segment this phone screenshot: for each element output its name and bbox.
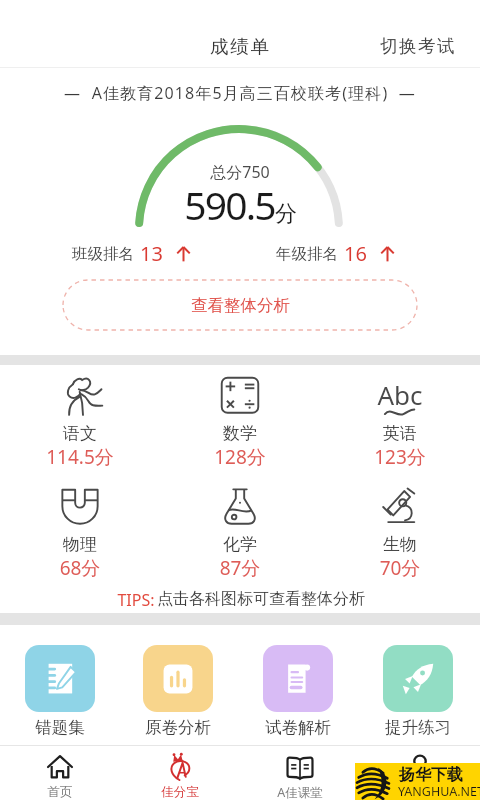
button[interactable]: Abc bbox=[338, 369, 462, 471]
staticText: Abc bbox=[338, 377, 462, 412]
staticText: 查看整体分析 bbox=[191, 295, 290, 316]
staticText: 扬华下载 bbox=[399, 765, 463, 785]
button[interactable]: 我的 bbox=[378, 745, 462, 800]
button[interactable]: 试卷解析 bbox=[250, 640, 346, 740]
staticText: 分 bbox=[275, 200, 297, 228]
staticText: 数学 bbox=[178, 423, 302, 444]
staticText: 成绩单 bbox=[210, 35, 271, 58]
button[interactable]: 成绩单 bbox=[210, 35, 271, 58]
staticText: 物理 bbox=[18, 534, 142, 555]
staticText: 我的 bbox=[378, 784, 462, 800]
button[interactable]: 年级排名 bbox=[276, 240, 394, 267]
staticText: 87分 bbox=[178, 555, 302, 581]
staticText: — A佳教育2018年5月高三百校联考(理科) — bbox=[0, 82, 480, 104]
button[interactable]: 原卷分析 bbox=[130, 640, 226, 740]
button[interactable]: 切换考试 bbox=[360, 25, 480, 67]
staticText: 13 bbox=[140, 240, 163, 267]
button[interactable]: 数学 bbox=[178, 369, 302, 471]
staticText: 首页 bbox=[18, 784, 102, 800]
staticText: TIPS: bbox=[115, 589, 157, 611]
staticText: 16 bbox=[344, 240, 367, 267]
staticText: 590.5 bbox=[184, 178, 275, 231]
staticText: YANGHUA.NET bbox=[398, 783, 480, 800]
staticText: 化学 bbox=[178, 534, 302, 555]
staticText: A佳课堂 bbox=[258, 784, 342, 800]
button[interactable]: 首页 bbox=[18, 745, 102, 800]
staticText: 原卷分析 bbox=[130, 717, 226, 738]
staticText: 语文 bbox=[18, 423, 142, 444]
staticText: 年级排名 bbox=[276, 244, 338, 264]
button[interactable]: 错题集 bbox=[12, 640, 108, 740]
button[interactable]: 生物 bbox=[338, 480, 462, 582]
staticText: 70分 bbox=[338, 555, 462, 581]
button[interactable]: A佳课堂 bbox=[258, 745, 342, 800]
staticText: 总分750 bbox=[0, 161, 480, 183]
button[interactable]: 提升练习 bbox=[370, 640, 466, 740]
button[interactable]: 物理 bbox=[18, 480, 142, 582]
staticText: 试卷解析 bbox=[250, 717, 346, 738]
staticText: 点击各科图标可查看整体分析 bbox=[157, 589, 365, 609]
button[interactable]: 佳分宝 bbox=[138, 745, 222, 800]
staticText: 班级排名 bbox=[72, 244, 134, 264]
staticText: 128分 bbox=[178, 444, 302, 470]
staticText: 错题集 bbox=[12, 717, 108, 738]
staticText: 生物 bbox=[338, 534, 462, 555]
staticText: 114.5分 bbox=[18, 444, 142, 470]
staticText: 68分 bbox=[18, 555, 142, 581]
button[interactable]: 班级排名 bbox=[72, 240, 190, 267]
button[interactable]: 化学 bbox=[178, 480, 302, 582]
staticText: 切换考试 bbox=[380, 35, 456, 57]
button[interactable]: 语文 bbox=[18, 369, 142, 471]
staticText: 123分 bbox=[338, 444, 462, 470]
button[interactable]: 查看整体分析 bbox=[63, 280, 417, 330]
staticText: 英语 bbox=[338, 423, 462, 444]
staticText: 佳分宝 bbox=[138, 784, 222, 800]
staticText: 提升练习 bbox=[370, 717, 466, 738]
